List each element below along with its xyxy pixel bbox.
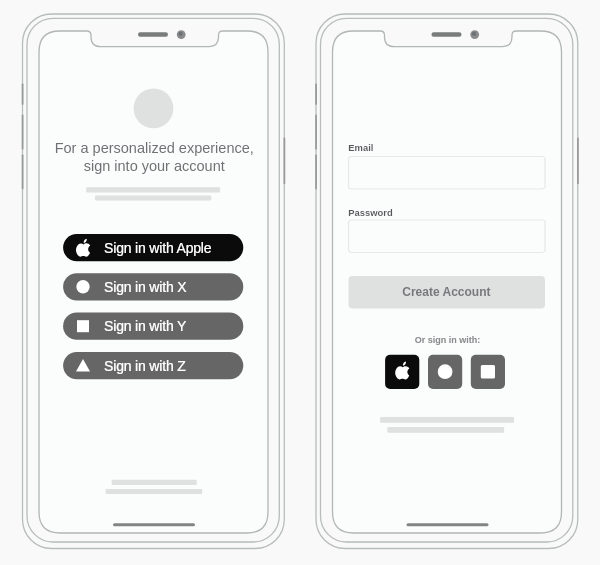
button[interactable]: Sign in with Y xyxy=(63,313,243,340)
button[interactable]: Sign in with X xyxy=(63,273,243,300)
button[interactable]: Sign in with Y xyxy=(471,355,505,389)
button[interactable]: Sign in with X xyxy=(428,355,462,389)
button[interactable]: Password field xyxy=(349,220,546,253)
button[interactable]: Create Account xyxy=(349,276,546,309)
button[interactable]: Sign in with Z xyxy=(63,352,243,379)
button[interactable]: Sign in with Apple xyxy=(63,234,243,261)
button[interactable]: Sign in with Apple xyxy=(385,355,419,389)
